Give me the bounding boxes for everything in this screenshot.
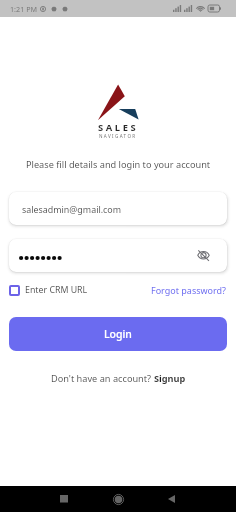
button[interactable]: Recents	[51, 486, 77, 512]
button[interactable]: Show password	[196, 248, 211, 263]
button[interactable]: Enter CRM URL	[9, 284, 88, 296]
button[interactable]: salesadmin@gmail.com	[9, 192, 227, 225]
button[interactable]: Home	[105, 486, 131, 512]
staticText: Login	[104, 327, 132, 341]
staticText: 1:21 PM	[10, 4, 37, 14]
staticText: salesadmin@gmail.com	[22, 203, 122, 215]
button[interactable]: Forgot password?	[151, 284, 227, 296]
button[interactable]: Back	[158, 486, 184, 512]
staticText: SALES	[98, 121, 139, 134]
button[interactable]: Signup	[154, 372, 186, 385]
button[interactable]: Login	[9, 317, 227, 351]
staticText: NAVIGATOR	[99, 133, 137, 139]
staticText: Please fill details and login to your ac…	[26, 158, 211, 171]
staticText: Enter CRM URL	[25, 284, 88, 296]
button[interactable]: Show password	[9, 239, 227, 272]
staticText: Don't have an account?	[51, 372, 154, 385]
